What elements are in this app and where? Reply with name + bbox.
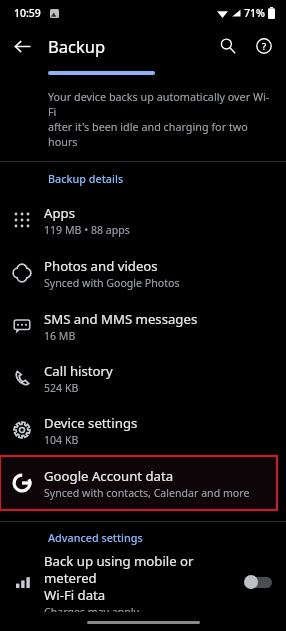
staticText: Synced with contacts, Calendar and more (44, 486, 250, 500)
staticText: Call history (44, 362, 113, 380)
button[interactable]: Google Account data (0, 456, 277, 510)
staticText: Synced with Google Photos (44, 276, 180, 290)
staticText: Backup details (48, 171, 124, 186)
staticText: 524 KB (44, 381, 79, 395)
button[interactable]: Device settings (0, 404, 286, 456)
staticText: Charges may apply (44, 605, 139, 612)
staticText: 119 MB • 88 apps (44, 223, 130, 237)
button[interactable]: Back (6, 30, 38, 62)
staticText: Device settings (44, 414, 138, 432)
button[interactable]: Help (248, 30, 280, 62)
staticText: Google Account data (44, 467, 174, 485)
button[interactable]: Call history (0, 352, 286, 404)
staticText: Photos and videos (44, 257, 158, 275)
staticText: Back up using mobile or metered (44, 552, 238, 586)
staticText: 71% (244, 6, 265, 20)
button[interactable]: Back up using mobile or metered (0, 552, 286, 612)
staticText: Apps (44, 204, 75, 222)
staticText: Backup (48, 35, 106, 57)
other: Back up using mobile data toggle (244, 571, 274, 593)
staticText: after it's been idle and charging for tw… (48, 119, 276, 149)
staticText: Advanced settings (48, 530, 143, 545)
button[interactable]: Search (212, 30, 244, 62)
staticText: SMS and MMS messages (44, 310, 198, 328)
staticText: 16 MB (44, 329, 76, 343)
staticText: Wi-Fi data (44, 586, 106, 604)
button[interactable]: Photos and videos (0, 246, 286, 300)
staticText: Your device backs up automatically over … (48, 89, 276, 119)
staticText: 104 KB (44, 433, 79, 447)
button[interactable]: SMS and MMS messages (0, 300, 286, 352)
staticText: ? (262, 40, 267, 53)
button[interactable]: Apps (0, 194, 286, 246)
staticText: 10:59 (14, 6, 41, 20)
